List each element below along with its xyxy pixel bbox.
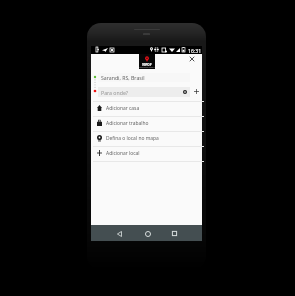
button[interactable]: Sarandi, RS, Brasil [98,73,190,82]
staticText: Para onde? [101,89,129,96]
staticText: MOBILIDADE URBANA [139,66,155,68]
button[interactable]: Defina o local no mapa [91,132,202,146]
button[interactable]: Para onde? [98,87,190,97]
staticText: Adicionar local [106,150,140,157]
staticText: 99POP [142,63,152,67]
button[interactable]: Voltar [113,227,126,240]
button[interactable]: Adicionar parada [191,86,201,96]
button[interactable]: Fechar [186,53,197,64]
button[interactable]: Adicionar trabalho [91,117,202,131]
staticText: Sarandi, RS, Brasil [101,74,145,81]
button[interactable]: Limpar [180,87,190,97]
button[interactable]: Recentes [168,227,181,240]
staticText: Adicionar trabalho [106,120,149,127]
button[interactable]: Adicionar local [91,147,202,161]
button[interactable]: Adicionar casa [91,102,202,116]
button[interactable]: Início [141,227,154,240]
staticText: Adicionar casa [106,105,140,112]
staticText: 16:31 [188,47,202,54]
staticText: Defina o local no mapa [106,135,159,142]
